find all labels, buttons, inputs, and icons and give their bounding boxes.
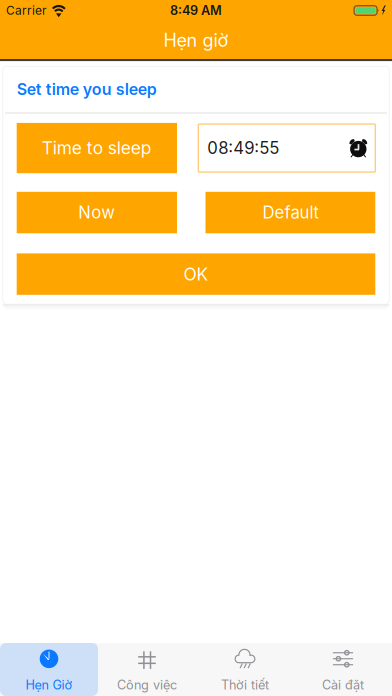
button[interactable]: Now	[17, 192, 177, 233]
staticText: Công việc	[117, 677, 177, 693]
button[interactable]: 08:49:55	[198, 124, 375, 172]
staticText: 8:49 AM	[170, 3, 222, 18]
button[interactable]: Công việc	[98, 643, 196, 696]
staticText: Thời tiết	[221, 677, 269, 693]
button[interactable]: Time to sleep	[17, 123, 177, 173]
staticText: Carrier	[6, 3, 47, 18]
staticText: Now	[78, 202, 115, 223]
staticText: 08:49:55	[207, 138, 279, 158]
staticText: Hẹn giờ	[163, 29, 228, 51]
staticText: Cài đặt	[322, 677, 364, 693]
staticText: Set time you sleep	[17, 80, 157, 99]
button[interactable]: Thời tiết	[196, 643, 294, 696]
staticText: Default	[262, 202, 318, 223]
staticText: OK	[183, 264, 208, 285]
button[interactable]: Default	[205, 192, 375, 233]
staticText: Time to sleep	[42, 138, 152, 159]
button[interactable]: OK	[17, 253, 375, 295]
button[interactable]: Hẹn Giờ	[0, 643, 98, 696]
staticText: Hẹn Giờ	[25, 677, 72, 693]
button[interactable]: Cài đặt	[294, 643, 392, 696]
